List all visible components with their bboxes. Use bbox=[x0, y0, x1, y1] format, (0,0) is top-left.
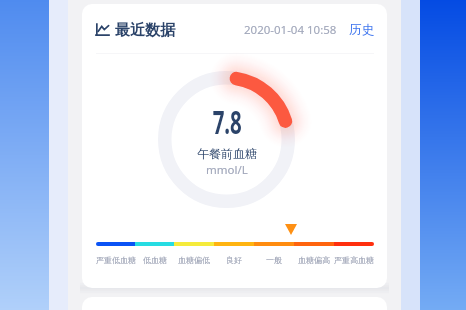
staticText: 最近数据 bbox=[115, 21, 175, 40]
staticText: 低血糖 bbox=[143, 255, 167, 265]
staticText: 血糖偏高 bbox=[298, 255, 330, 265]
button[interactable]: 历史 bbox=[349, 21, 374, 37]
staticText: 历史 bbox=[349, 22, 374, 38]
staticText: 血糖偏低 bbox=[178, 255, 210, 265]
staticText: 良好 bbox=[226, 255, 242, 265]
staticText: 严重高血糖 bbox=[334, 255, 374, 265]
staticText: 7.8 bbox=[213, 99, 242, 143]
staticText: 午餐前血糖 bbox=[197, 146, 257, 161]
staticText: 一般 bbox=[266, 255, 282, 265]
staticText: 2020-01-04 10:58 bbox=[244, 22, 337, 38]
staticText: mmol/L bbox=[206, 162, 248, 178]
staticText: 严重低血糖 bbox=[96, 255, 135, 265]
